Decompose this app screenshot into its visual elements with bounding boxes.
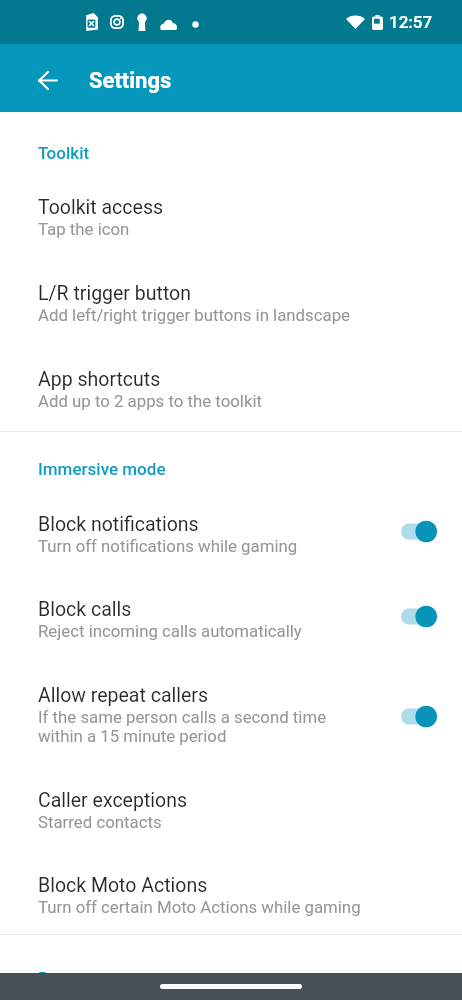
button[interactable]: Caller exceptions <box>0 769 462 849</box>
staticText: Turn off notifications while gaming <box>38 536 298 556</box>
button[interactable]: Allow repeat callers <box>0 664 462 764</box>
button[interactable]: Back <box>24 54 72 102</box>
button[interactable]: Block notifications <box>0 493 462 573</box>
staticText: Settings <box>89 68 172 94</box>
staticText: Allow repeat callers <box>38 684 209 707</box>
staticText: Block notifications <box>38 513 199 536</box>
button[interactable]: Block calls <box>0 578 462 658</box>
staticText: Block Moto Actions <box>38 874 208 897</box>
staticText: Toolkit access <box>38 196 164 219</box>
staticText: Toolkit <box>38 143 90 163</box>
button[interactable]: Toolkit access <box>0 176 462 256</box>
staticText: Starred contacts <box>38 812 162 832</box>
staticText: Reject incoming calls automatically <box>38 621 302 641</box>
staticText: Block calls <box>38 598 132 621</box>
staticText: Caller exceptions <box>38 789 187 812</box>
staticText: Tap the icon <box>38 219 130 239</box>
staticText: Reset <box>38 968 82 973</box>
button[interactable]: Block Moto Actions <box>0 854 462 934</box>
staticText: Add up to 2 apps to the toolkit <box>38 391 263 411</box>
staticText: App shortcuts <box>38 368 161 391</box>
button[interactable]: Toggle Block notifications <box>401 520 437 543</box>
button[interactable]: Toggle Allow repeat callers <box>401 705 437 728</box>
staticText: 12:57 <box>389 12 433 32</box>
staticText: Add left/right trigger buttons in landsc… <box>38 305 350 325</box>
staticText: If the same person calls a second time w… <box>38 707 327 747</box>
staticText: Turn off certain Moto Actions while gami… <box>38 897 361 917</box>
button[interactable]: L/R trigger button <box>0 262 462 342</box>
button[interactable]: App shortcuts <box>0 348 462 428</box>
staticText: L/R trigger button <box>38 282 191 305</box>
button[interactable]: Toggle Block calls <box>401 605 437 628</box>
staticText: Immersive mode <box>38 459 166 479</box>
